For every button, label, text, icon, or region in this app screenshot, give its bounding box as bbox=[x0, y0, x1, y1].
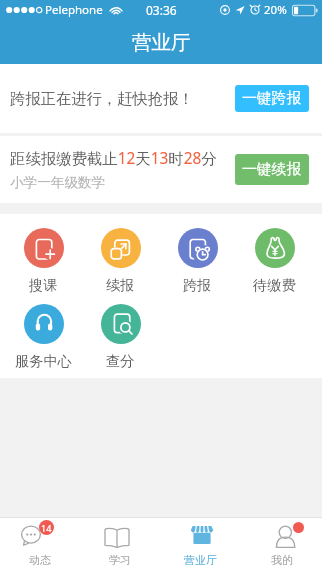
staticText: 一键跨报 bbox=[242, 89, 302, 108]
button[interactable]: 14 bbox=[0, 517, 80, 572]
staticText: Pelephone bbox=[45, 2, 103, 18]
button[interactable]: 跨报 bbox=[159, 228, 236, 294]
button[interactable]: 一键续报 bbox=[235, 154, 309, 185]
staticText: 03:36 bbox=[146, 2, 177, 18]
staticText: 搜课 bbox=[29, 276, 58, 294]
staticText: 学习 bbox=[109, 553, 131, 567]
staticText: 20% bbox=[264, 2, 287, 18]
button[interactable]: 搜课 bbox=[5, 228, 82, 294]
staticText: 查分 bbox=[106, 352, 135, 370]
button[interactable]: 查分 bbox=[82, 304, 159, 370]
staticText: 跨报正在进行，赶快抢报！ bbox=[10, 89, 194, 108]
staticText: 续报 bbox=[106, 276, 135, 294]
staticText: 跨报 bbox=[183, 276, 212, 294]
staticText: 我的 bbox=[271, 553, 293, 567]
button[interactable]: 我的 bbox=[241, 517, 322, 572]
button[interactable]: 学习 bbox=[80, 517, 160, 572]
staticText: 待缴费 bbox=[253, 276, 296, 294]
button[interactable]: 待缴费 bbox=[236, 228, 313, 294]
staticText: 14 bbox=[41, 522, 52, 534]
staticText: 距续报缴费截止12天13时28分 bbox=[10, 148, 217, 169]
button[interactable]: 续报 bbox=[82, 228, 159, 294]
staticText: 动态 bbox=[29, 553, 51, 567]
button[interactable]: 营业厅 bbox=[160, 517, 241, 572]
staticText: 服务中心 bbox=[15, 352, 72, 370]
staticText: 营业厅 bbox=[184, 553, 217, 567]
staticText: 营业厅 bbox=[132, 30, 191, 55]
button[interactable]: 一键跨报 bbox=[235, 85, 309, 112]
button[interactable]: 服务中心 bbox=[5, 304, 82, 370]
staticText: 一键续报 bbox=[242, 160, 302, 179]
staticText: 小学一年级数学 bbox=[10, 174, 106, 191]
